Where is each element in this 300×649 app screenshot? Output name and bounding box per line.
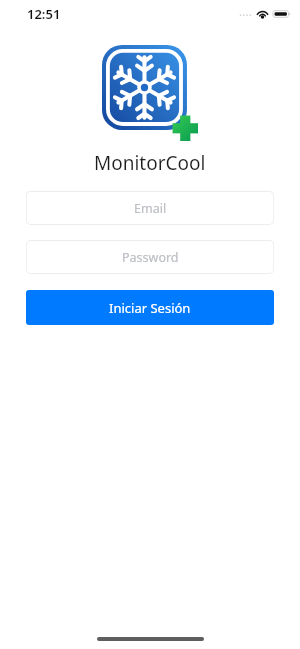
other: MonitorCool logo [102, 45, 198, 141]
button[interactable]: Email [26, 191, 274, 225]
staticText: MonitorCool [94, 150, 206, 176]
button[interactable]: Password [26, 240, 274, 274]
button[interactable]: Iniciar Sesión [26, 290, 274, 325]
staticText: Password [122, 249, 179, 266]
staticText: Iniciar Sesión [109, 299, 191, 317]
staticText: Email [134, 200, 167, 217]
staticText: 12:51 [27, 5, 61, 23]
